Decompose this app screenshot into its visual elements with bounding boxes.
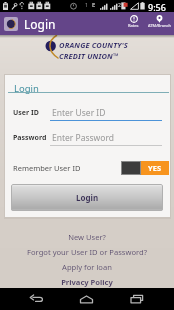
button[interactable]: Enter User ID bbox=[50, 104, 162, 121]
staticText: Enter User ID bbox=[52, 107, 106, 119]
button[interactable]: Forgot your User ID or Password? bbox=[0, 244, 174, 259]
button[interactable]: Recent apps bbox=[116, 288, 174, 310]
staticText: Login bbox=[24, 16, 56, 32]
staticText: Login bbox=[76, 192, 99, 203]
staticText: E bbox=[92, 1, 96, 9]
button[interactable]: App icon bbox=[4, 17, 18, 31]
button[interactable]: Enter Password bbox=[50, 129, 162, 146]
button[interactable]: Rates bbox=[121, 12, 145, 35]
button[interactable]: ATM and Branch locations bbox=[145, 12, 173, 35]
staticText: User ID bbox=[13, 108, 39, 118]
button[interactable]: New User? bbox=[0, 229, 174, 244]
staticText: YES bbox=[148, 163, 162, 173]
button[interactable]: Apply for loan bbox=[0, 259, 174, 274]
button[interactable]: Login bbox=[11, 184, 163, 211]
staticText: Remember User ID bbox=[13, 163, 81, 173]
staticText: Password bbox=[13, 133, 47, 143]
staticText: 1 bbox=[85, 2, 88, 9]
button[interactable]: Back bbox=[0, 288, 58, 310]
staticText: CREDIT UNION™ bbox=[59, 51, 119, 61]
button[interactable]: Home bbox=[58, 288, 116, 310]
staticText: 9:56 bbox=[148, 1, 166, 13]
staticText: New User? bbox=[68, 232, 106, 242]
button[interactable]: Remember User ID toggle bbox=[121, 161, 169, 175]
staticText: Forgot your User ID or Password? bbox=[27, 247, 147, 257]
button[interactable]: Privacy Policy bbox=[0, 274, 174, 289]
staticText: Privacy Policy bbox=[61, 277, 113, 287]
staticText: Apply for loan bbox=[62, 262, 112, 272]
staticText: 2 bbox=[118, 2, 121, 9]
staticText: ORANGE COUNTY'S bbox=[59, 40, 128, 50]
staticText: Login bbox=[14, 82, 39, 95]
staticText: Enter Password bbox=[52, 132, 115, 144]
staticText: ATM/Branch bbox=[148, 23, 171, 28]
staticText: Rates bbox=[128, 23, 139, 28]
